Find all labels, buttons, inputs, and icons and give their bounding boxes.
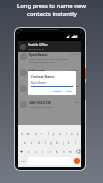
- staticText: Long press to name new: [17, 2, 86, 10]
- staticText: u: [59, 132, 61, 136]
- staticText: k: [68, 141, 70, 145]
- button[interactable]: s: [28, 138, 35, 147]
- button[interactable]: Backspace: [74, 147, 81, 156]
- staticText: I'm attending and changing my: [29, 89, 65, 92]
- button[interactable]: y: [51, 129, 57, 138]
- staticText: q: [21, 132, 23, 136]
- button[interactable]: (406) 555-0128: [18, 100, 81, 116]
- staticText: r: [41, 132, 43, 136]
- button[interactable]: x: [32, 147, 39, 156]
- staticText: b: [56, 150, 58, 154]
- button[interactable]: p: [75, 129, 81, 138]
- button[interactable]: u: [57, 129, 63, 138]
- staticText: Ryan Baxter: [31, 81, 47, 85]
- staticText: p: [77, 132, 79, 136]
- button[interactable]: n: [60, 147, 67, 156]
- button[interactable]: c: [39, 147, 46, 156]
- staticText: Sarah Mancini: [29, 85, 51, 89]
- button[interactable]: q: [18, 129, 25, 138]
- staticText: CANCEL: [53, 90, 62, 93]
- staticText: Julia Levin: [29, 69, 45, 73]
- staticText: (406) 555-0128: [29, 101, 51, 105]
- button[interactable]: a: [21, 138, 28, 147]
- staticText: f: [45, 141, 46, 145]
- staticText: x: [35, 150, 37, 154]
- staticText: c: [42, 150, 44, 154]
- staticText: y: [53, 132, 55, 136]
- staticText: Thank you so much!: [29, 105, 52, 108]
- button[interactable]: Shift: [18, 147, 25, 156]
- button[interactable]: Send: [74, 158, 80, 164]
- staticText: s: [31, 141, 33, 145]
- staticText: e: [35, 132, 37, 136]
- staticText: m: [69, 150, 72, 154]
- button[interactable]: m: [67, 147, 74, 156]
- staticText: t: [48, 132, 49, 136]
- staticText: j: [63, 141, 64, 145]
- button[interactable]: o: [69, 129, 75, 138]
- button[interactable]: CANCEL: [52, 90, 63, 93]
- staticText: (406) 555-0199: [28, 47, 45, 50]
- staticText: contacts instantly: [27, 10, 77, 18]
- staticText: n: [63, 150, 65, 154]
- staticText: h: [56, 141, 58, 145]
- button[interactable]: ?123: [19, 157, 27, 165]
- staticText: Yest: [75, 101, 79, 104]
- staticText: d: [38, 141, 40, 145]
- button[interactable]: e: [32, 129, 39, 138]
- button[interactable]: Ryan Baxter: [18, 52, 81, 68]
- staticText: Great, thanks! I'll send you photos: [29, 57, 68, 60]
- staticText: Ryan Baxter: [29, 53, 48, 57]
- staticText: and I'll bring the files: [29, 76, 53, 79]
- staticText: l: [75, 141, 76, 145]
- button[interactable]: j: [60, 138, 66, 147]
- button[interactable]: z: [25, 147, 32, 156]
- staticText: v: [49, 150, 51, 154]
- button[interactable]: f: [42, 138, 48, 147]
- button[interactable]: Seattle Office: [18, 41, 81, 52]
- button[interactable]: h: [54, 138, 60, 147]
- staticText: on Saturday after 2pm: [29, 60, 55, 63]
- staticText: Yest: [75, 85, 79, 88]
- staticText: 9:02 AM: [71, 69, 79, 72]
- button[interactable]: v: [46, 147, 53, 156]
- button[interactable]: w: [25, 129, 32, 138]
- button[interactable]: l: [72, 138, 78, 147]
- button[interactable]: i: [63, 129, 69, 138]
- staticText: i: [66, 132, 67, 136]
- staticText: 10:41 AM: [70, 53, 79, 56]
- staticText: g: [50, 141, 52, 145]
- staticText: SAVE: [66, 90, 72, 93]
- button[interactable]: d: [35, 138, 42, 147]
- button[interactable]: r: [39, 129, 45, 138]
- staticText: o: [71, 132, 73, 136]
- staticText: Sounds good - let's catch up then: [29, 73, 67, 76]
- button[interactable]: b: [53, 147, 60, 156]
- staticText: w: [27, 132, 30, 136]
- staticText: z: [28, 150, 30, 154]
- staticText: Contact Name: [31, 74, 55, 78]
- button[interactable]: Sarah Mancini: [18, 84, 81, 100]
- staticText: ?123: [21, 160, 26, 163]
- button[interactable]: Julia Levin: [18, 68, 81, 84]
- staticText: a: [24, 141, 26, 145]
- button[interactable]: t: [45, 129, 51, 138]
- button[interactable]: k: [66, 138, 72, 147]
- staticText: Seattle Office: [28, 43, 48, 47]
- button[interactable]: SAVE: [65, 90, 73, 93]
- button[interactable]: g: [48, 138, 54, 147]
